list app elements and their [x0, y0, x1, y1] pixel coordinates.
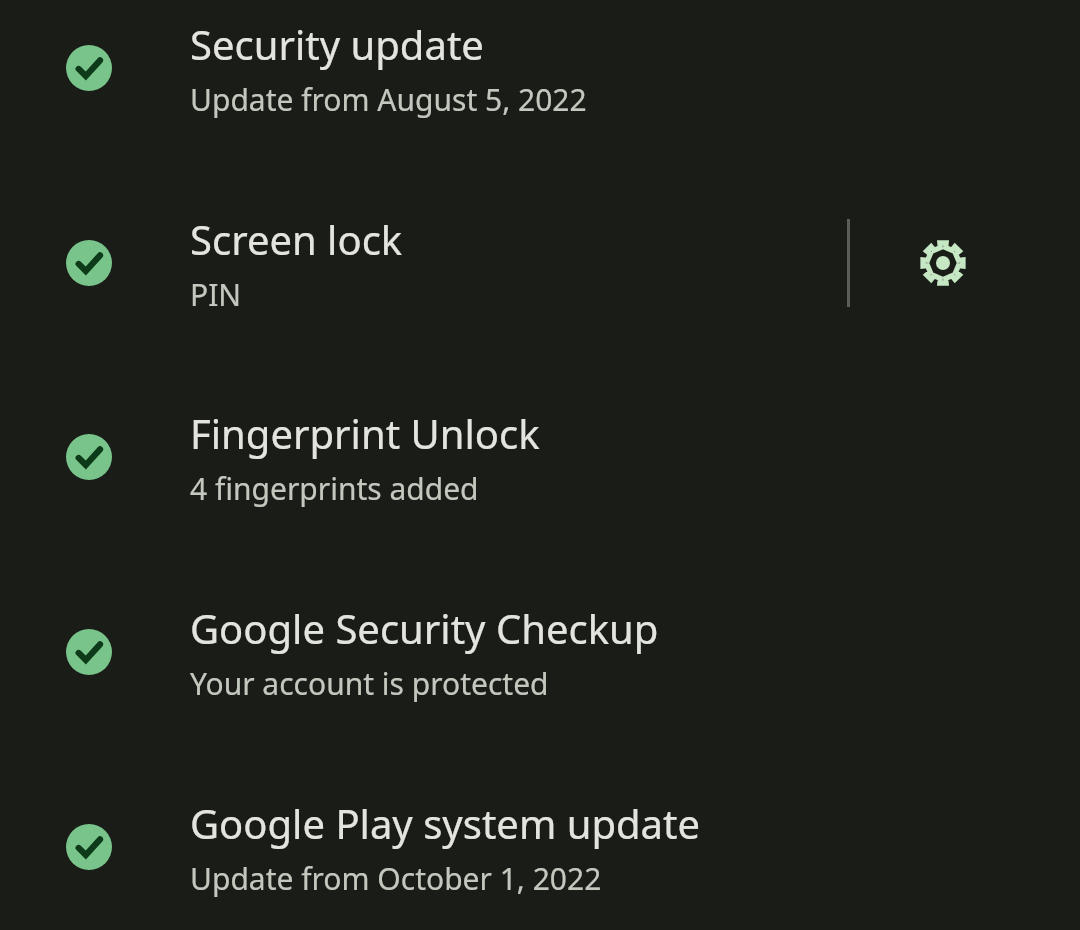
button[interactable]: Screen lock settings: [850, 185, 1080, 341]
button[interactable]: Screen lock: [0, 185, 1080, 341]
staticText: PIN: [190, 274, 242, 315]
staticText: 4 fingerprints added: [190, 468, 479, 509]
staticText: Update from October 1, 2022: [190, 858, 602, 899]
button[interactable]: Fingerprint Unlock: [0, 379, 1080, 535]
staticText: Google Security Checkup: [190, 601, 659, 655]
other: Screen lock settings: [917, 237, 969, 289]
staticText: Update from August 5, 2022: [190, 79, 587, 120]
button[interactable]: Security update: [0, 0, 1080, 146]
staticText: Screen lock: [190, 212, 403, 266]
button[interactable]: Google Security Checkup: [0, 574, 1080, 730]
staticText: Fingerprint Unlock: [190, 406, 540, 460]
button[interactable]: Google Play system update: [0, 769, 1080, 925]
staticText: Your account is protected: [190, 663, 549, 704]
staticText: Security update: [190, 17, 484, 71]
staticText: Google Play system update: [190, 796, 701, 850]
